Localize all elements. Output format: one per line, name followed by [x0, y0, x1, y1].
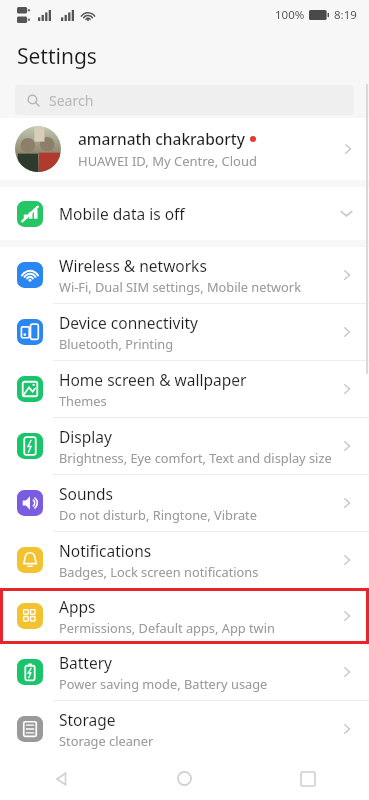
staticText: Home screen & wallpaper [59, 369, 247, 390]
staticText: Badges, Lock screen notifications [59, 563, 259, 580]
staticText: Apps [59, 596, 96, 617]
staticText: Permissions, Default apps, App twin [59, 619, 275, 636]
button[interactable]: Back [0, 757, 123, 800]
staticText: Device connectivity [59, 312, 198, 333]
staticText: 8:19 [334, 7, 357, 23]
staticText: Bluetooth, Printing [59, 335, 174, 352]
staticText: Notifications [59, 540, 152, 561]
staticText: Battery [59, 652, 113, 673]
button[interactable]: Sounds [0, 475, 369, 531]
staticText: Mobile data is off [59, 203, 185, 224]
staticText: Wireless & networks [59, 255, 207, 276]
staticText: HUAWEI ID, My Centre, Cloud [78, 152, 257, 170]
button[interactable]: Device connectivity [0, 304, 369, 360]
staticText: Sounds [59, 483, 114, 504]
staticText: Power saving mode, Battery usage [59, 675, 268, 692]
button[interactable]: Apps [0, 588, 369, 644]
staticText: Storage cleaner [59, 732, 154, 749]
staticText: Storage [59, 709, 116, 730]
button[interactable]: Home screen & wallpaper [0, 361, 369, 417]
button[interactable]: Search [15, 85, 354, 115]
staticText: 100% [275, 7, 305, 23]
staticText: amarnath chakraborty [78, 128, 245, 149]
button[interactable]: Wireless & networks [0, 247, 369, 303]
button[interactable]: amarnath chakraborty [0, 118, 369, 180]
button[interactable]: Notifications [0, 532, 369, 588]
staticText: Search [49, 91, 94, 110]
staticText: Brightness, Eye comfort, Text and displa… [59, 449, 332, 466]
button[interactable]: Battery [0, 644, 369, 700]
button[interactable]: Home [123, 757, 246, 800]
staticText: Wi-Fi, Dual SIM settings, Mobile network [59, 278, 301, 295]
staticText: Display [59, 426, 112, 447]
button[interactable]: Display [0, 418, 369, 474]
button[interactable]: Recent apps [246, 757, 369, 800]
staticText: Settings [17, 42, 97, 71]
button[interactable]: Mobile data is off [0, 187, 369, 240]
staticText: Themes [59, 392, 107, 409]
button[interactable]: Storage [0, 701, 369, 757]
staticText: Do not disturb, Ringtone, Vibrate [59, 506, 257, 523]
other: Expand [339, 206, 354, 221]
